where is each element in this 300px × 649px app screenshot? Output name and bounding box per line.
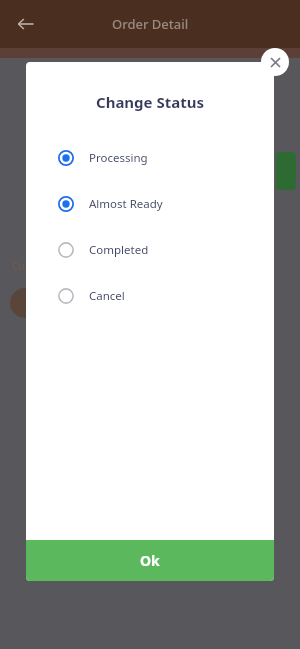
staticText: Order Detail (112, 15, 189, 33)
staticText: Change Status (26, 92, 274, 112)
staticText: Customer (14, 259, 61, 273)
button[interactable]: Back (10, 8, 42, 40)
staticText: Cancel (89, 288, 125, 304)
staticText: Order Detail (112, 15, 189, 33)
button[interactable] (276, 152, 296, 190)
button[interactable]: Close (261, 48, 289, 76)
staticText: Completed (89, 242, 149, 258)
staticText: Ok (140, 551, 160, 570)
button[interactable]: Ok (26, 540, 274, 581)
staticText: Processing (89, 150, 148, 166)
button[interactable]: Completed (26, 227, 274, 273)
button[interactable]: Cancel (26, 273, 274, 319)
staticText: Almost Ready (89, 196, 163, 212)
button[interactable] (276, 152, 298, 190)
button[interactable]: Almost Ready (26, 181, 274, 227)
staticText: Cu (12, 259, 25, 273)
button[interactable]: Back (10, 8, 42, 40)
button[interactable]: Processing (26, 135, 274, 181)
